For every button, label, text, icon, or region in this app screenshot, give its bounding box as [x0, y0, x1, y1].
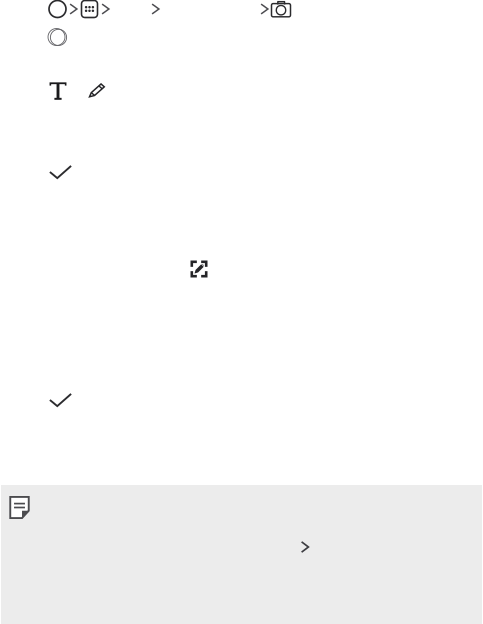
staticText: and confirm the change.	[66, 22, 334, 52]
button[interactable]: Related article. Learn more about Markup	[0, 485, 483, 624]
